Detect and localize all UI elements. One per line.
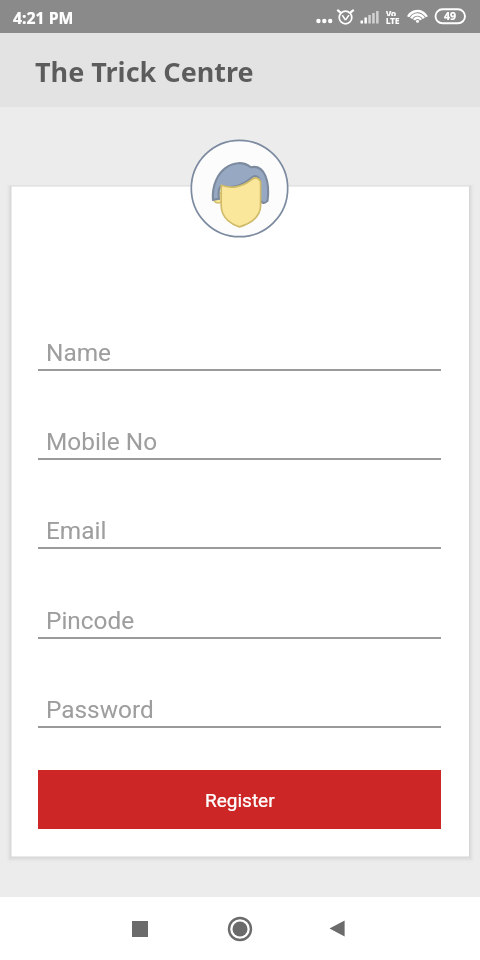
staticText: Pincode (46, 606, 135, 635)
staticText: Mobile No (46, 427, 158, 456)
staticText: 49 (444, 9, 457, 23)
staticText: Password (46, 695, 154, 724)
button[interactable]: Home (210, 897, 270, 960)
staticText: Name (46, 338, 111, 367)
button[interactable]: Email (38, 505, 441, 549)
button[interactable]: Mobile No (38, 416, 441, 460)
staticText: Vo (386, 8, 397, 16)
staticText: Register (205, 789, 275, 811)
button[interactable]: Register (38, 770, 441, 829)
staticText: Email (46, 516, 107, 545)
staticText: 4:21 PM (13, 7, 74, 29)
button[interactable]: Password (38, 684, 441, 728)
button[interactable]: Profile photo (190, 139, 289, 238)
staticText: The Trick Centre (35, 53, 254, 90)
button[interactable]: Recent apps (110, 897, 170, 960)
button[interactable]: Name (38, 327, 441, 371)
button[interactable]: Pincode (38, 595, 441, 639)
button[interactable]: Back (307, 897, 367, 960)
staticText: LTE (386, 15, 400, 24)
